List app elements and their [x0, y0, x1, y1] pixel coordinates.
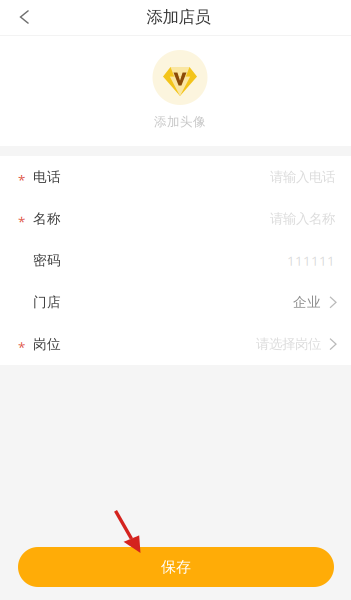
button[interactable]: 保存	[18, 547, 334, 587]
button[interactable]: *	[0, 198, 351, 240]
staticText: 门店	[33, 294, 61, 311]
staticText: *	[18, 213, 25, 231]
staticText: *	[18, 171, 25, 189]
staticText: 111111	[287, 251, 335, 270]
button[interactable]: 添加头像	[120, 36, 230, 136]
staticText: 企业	[293, 294, 321, 311]
staticText: *	[18, 338, 25, 356]
button[interactable]: 门店	[0, 281, 351, 323]
staticText: 添加头像	[154, 114, 206, 130]
staticText: 请输入电话	[270, 168, 335, 185]
button[interactable]: *	[0, 156, 351, 198]
button[interactable]: *	[0, 323, 351, 365]
staticText: 密码	[33, 252, 61, 269]
staticText: 请选择岗位	[256, 336, 321, 353]
button[interactable]: Back	[0, 1, 48, 35]
staticText: 保存	[161, 557, 191, 576]
staticText: 名称	[33, 210, 61, 227]
staticText: 电话	[33, 168, 61, 185]
staticText: 请输入名称	[270, 210, 335, 227]
staticText: 添加店员	[146, 7, 210, 27]
staticText: 岗位	[33, 335, 61, 353]
button[interactable]: 密码	[0, 240, 351, 281]
